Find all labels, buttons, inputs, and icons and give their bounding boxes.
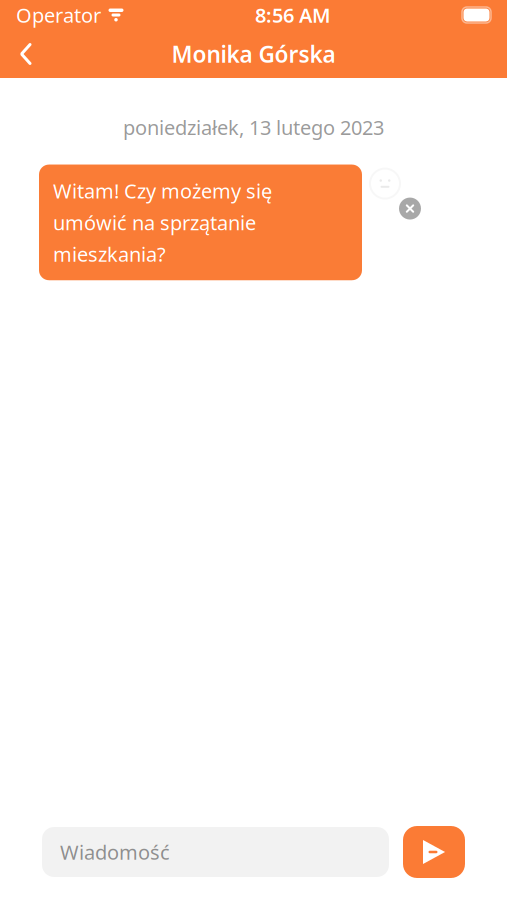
staticText: Wiadomość — [60, 839, 170, 865]
button[interactable]: Wiadomość — [42, 827, 389, 877]
staticText: poniedziałek, 13 lutego 2023 — [123, 114, 384, 141]
staticText: 8:56 AM — [255, 2, 331, 28]
staticText: Operator — [16, 2, 101, 28]
button[interactable]: Send — [403, 826, 465, 878]
button[interactable]: Back — [0, 31, 52, 77]
button[interactable]: Failed to send, retry — [395, 194, 425, 224]
staticText: Witam! Czy możemy się umówić na sprzątan… — [53, 178, 272, 267]
staticText: Monika Górska — [171, 39, 335, 69]
